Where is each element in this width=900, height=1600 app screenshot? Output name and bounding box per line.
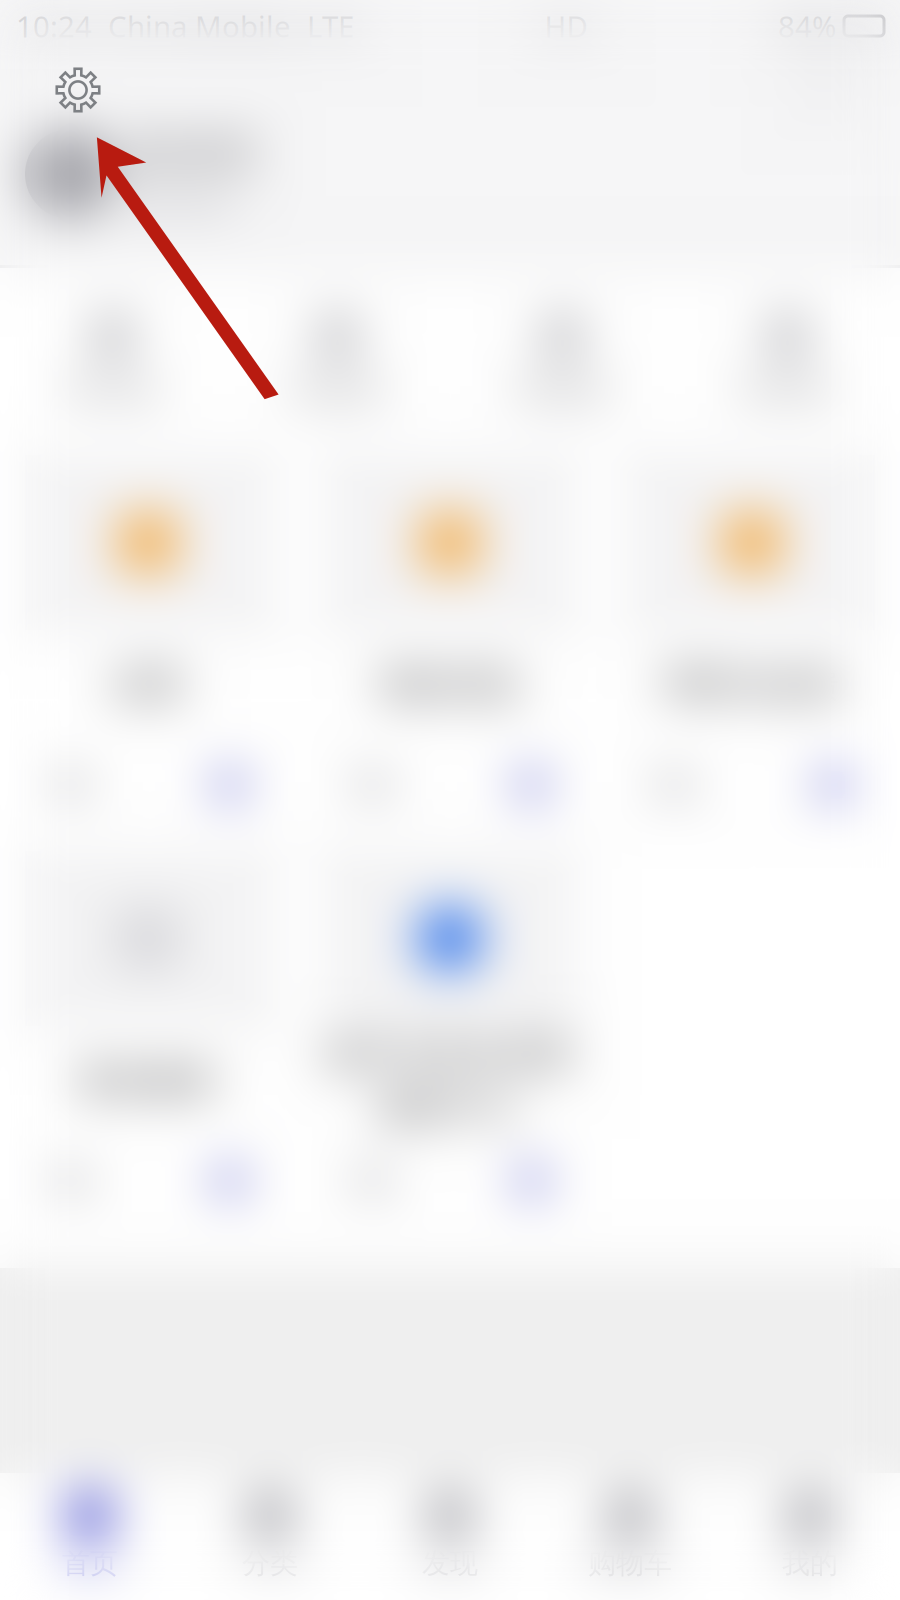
staticText: 帮助与反馈 — [664, 664, 839, 706]
staticText: 首页 — [62, 1546, 118, 1581]
button[interactable]: 发现 — [360, 1473, 540, 1600]
button[interactable]: 购物车 — [540, 1473, 720, 1600]
staticText: 更多服务 — [78, 1060, 218, 1102]
button[interactable]: 分类 — [180, 1473, 360, 1600]
button[interactable]: 待收货 — [450, 295, 675, 427]
staticText: 账号与安全设置 — [327, 1033, 572, 1076]
staticText: 待收货 — [516, 372, 609, 409]
staticText: 待评价 — [741, 372, 834, 409]
staticText: 10:24 China Mobile LTE — [16, 6, 354, 45]
staticText: 隐私中心 — [380, 1086, 520, 1129]
button[interactable]: 账号与安全设置 — [327, 851, 572, 1226]
staticText: 发现 — [422, 1546, 478, 1581]
staticText: 设置 — [113, 664, 183, 706]
button[interactable]: 帮助与反馈 — [629, 455, 874, 830]
staticText: 查看资料 — [129, 188, 237, 221]
staticText: 分类 — [242, 1546, 298, 1581]
staticText: 我的消息 — [380, 664, 520, 706]
button[interactable]: 首页 — [0, 1473, 180, 1600]
staticText: 我的 — [782, 1546, 838, 1581]
staticText: 待付款 — [66, 372, 159, 409]
button[interactable]: 待评价 — [675, 295, 900, 427]
staticText: HD — [544, 6, 587, 45]
button[interactable]: Settings — [0, 0, 900, 1600]
staticText: 购物车 — [588, 1546, 672, 1581]
staticText: 待发货 — [291, 372, 384, 409]
button[interactable]: 我的消息 — [327, 455, 572, 830]
button[interactable]: 设置 — [25, 455, 270, 830]
staticText: 84% — [778, 6, 836, 45]
button[interactable]: 我的 — [720, 1473, 900, 1600]
staticText: 昵称昵 — [129, 127, 258, 179]
button[interactable]: 待付款 — [0, 295, 225, 427]
button[interactable]: 待发货 — [225, 295, 450, 427]
button[interactable]: 更多服务 — [25, 851, 270, 1226]
